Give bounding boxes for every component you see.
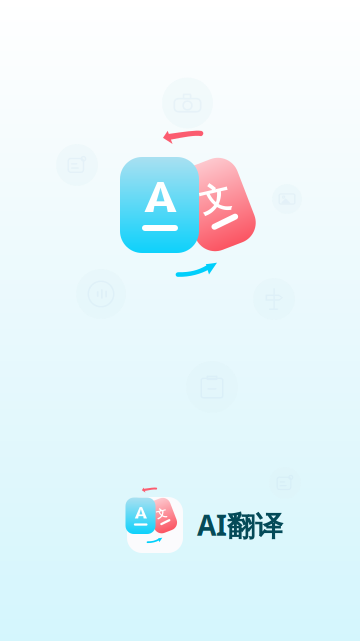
staticText: 文 [156, 507, 167, 520]
staticText: 文 [199, 180, 230, 218]
staticText: AI翻译 [197, 506, 283, 544]
